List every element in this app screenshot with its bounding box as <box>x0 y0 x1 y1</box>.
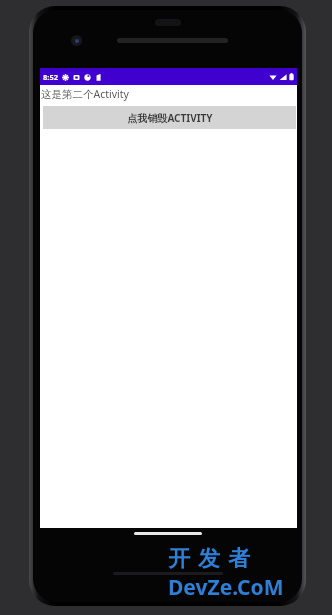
staticText: 点我销毁ACTIVITY <box>127 111 213 125</box>
staticText: 者 <box>228 545 250 573</box>
button[interactable]: 点我销毁ACTIVITY <box>43 106 296 129</box>
staticText: DevZe.CoM <box>168 573 284 602</box>
staticText: 8:52 <box>43 72 58 82</box>
staticText: 发 <box>198 545 220 573</box>
staticText: 这是第二个Activity <box>41 87 129 101</box>
staticText: 开 <box>168 545 190 573</box>
